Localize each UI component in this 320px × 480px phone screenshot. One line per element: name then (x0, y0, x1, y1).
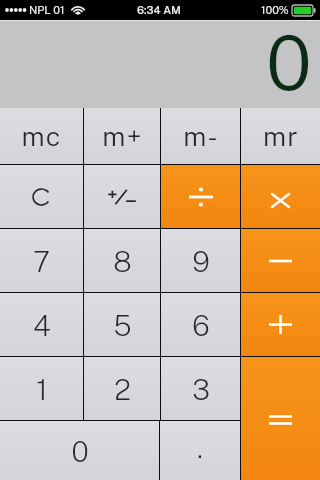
staticText: 5 (113, 308, 132, 342)
staticText: 0 (71, 434, 89, 468)
button[interactable]: m- (161, 108, 240, 164)
staticText: NPL 01 (29, 4, 65, 17)
button[interactable]: Equals (241, 357, 320, 480)
button[interactable]: Plus minus (84, 165, 160, 228)
button[interactable]: 9 (161, 229, 240, 292)
button[interactable]: Clear (0, 165, 83, 228)
staticText: 8 (113, 244, 132, 278)
button[interactable]: m+ (84, 108, 160, 164)
button[interactable]: Operator (241, 293, 320, 356)
button[interactable]: mr (241, 108, 320, 164)
button[interactable]: 1 (0, 357, 83, 420)
button[interactable]: 6 (161, 293, 240, 356)
staticText: mc (21, 120, 62, 152)
button[interactable]: 2 (84, 357, 160, 420)
staticText: 4 (33, 308, 51, 342)
button[interactable]: 0 (0, 421, 159, 480)
staticText: 9 (192, 244, 210, 278)
staticText: 100% (261, 4, 289, 17)
staticText: mr (263, 120, 299, 152)
staticText: 7 (33, 244, 50, 278)
staticText: . (197, 430, 203, 464)
button[interactable]: 3 (161, 357, 240, 420)
button[interactable]: Operator (241, 229, 320, 292)
button[interactable]: Multiply (241, 165, 320, 228)
staticText: m- (183, 120, 219, 152)
button[interactable]: 8 (84, 229, 160, 292)
staticText: 6 (192, 308, 210, 342)
staticText: 6:34 AM (137, 4, 181, 17)
button[interactable]: mc (0, 108, 83, 164)
staticText: m+ (102, 120, 143, 152)
staticText: 3 (192, 372, 210, 406)
button[interactable]: 4 (0, 293, 83, 356)
button[interactable]: . (160, 421, 240, 480)
button[interactable]: 5 (84, 293, 160, 356)
staticText: 2 (114, 372, 131, 406)
button[interactable]: 7 (0, 229, 83, 292)
button[interactable]: Divide (161, 165, 240, 228)
staticText: 0 (266, 18, 312, 106)
staticText: 1 (36, 372, 48, 406)
